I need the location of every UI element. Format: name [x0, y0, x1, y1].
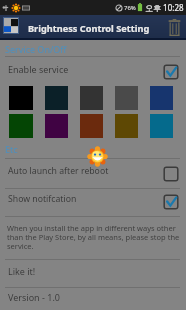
button[interactable]	[0, 259, 186, 288]
button[interactable]: Delete	[164, 16, 185, 39]
button[interactable]: Enable service	[157, 59, 185, 85]
staticText: Show notifcation	[8, 193, 77, 205]
staticText: 오후 10:28	[145, 2, 184, 13]
button[interactable]: When you install the app in different wa…	[7, 223, 183, 251]
button[interactable]: Show notification	[157, 189, 185, 215]
staticText: Etc	[5, 143, 18, 155]
staticText: Enable service	[8, 63, 69, 75]
staticText: Version - 1.0	[8, 291, 60, 303]
button[interactable]: Auto launch after reboot	[157, 161, 185, 187]
staticText: Auto launch after reboot	[8, 165, 109, 177]
button[interactable]	[0, 287, 186, 310]
other: Brightness	[87, 146, 108, 167]
staticText: Service On/Off	[5, 43, 67, 55]
staticText: 76%	[124, 4, 136, 12]
staticText: Brightness Control Setting	[28, 22, 150, 35]
staticText: Like it!	[8, 265, 36, 277]
